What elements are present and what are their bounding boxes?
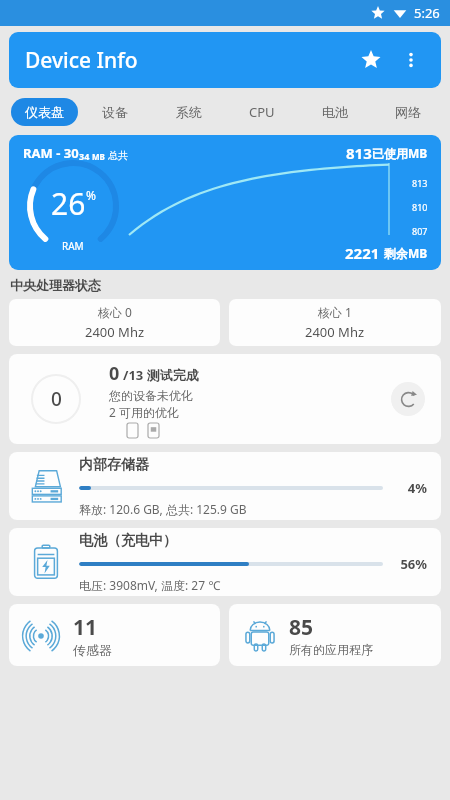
- staticText: RAM - 30: [23, 144, 79, 162]
- staticText: 核心 1: [318, 304, 352, 320]
- staticText: 总共: [108, 149, 128, 162]
- staticText: /13 测试完成: [123, 366, 199, 384]
- staticText: 2 可用的优化: [109, 404, 179, 420]
- staticText: 813: [412, 177, 428, 189]
- button[interactable]: 内部存储器: [9, 452, 441, 520]
- button[interactable]: RAM - 30: [9, 135, 441, 270]
- staticText: 设备: [102, 104, 128, 120]
- button[interactable]: 网络: [389, 98, 427, 126]
- staticText: 释放: 120.6 GB, 总共: 125.9 GB: [79, 501, 247, 517]
- button[interactable]: 电池: [316, 98, 354, 126]
- button[interactable]: Refresh: [391, 382, 425, 416]
- staticText: 电池（充电中）: [79, 532, 177, 550]
- button[interactable]: 电池（充电中）: [9, 528, 441, 596]
- staticText: 26: [51, 183, 86, 224]
- button[interactable]: 11: [9, 604, 220, 666]
- staticText: 电压: 3908mV, 温度: 27 ℃: [79, 577, 221, 593]
- staticText: 0: [51, 386, 62, 412]
- staticText: 系统: [176, 104, 202, 120]
- staticText: CPU: [249, 103, 275, 121]
- staticText: %: [86, 187, 96, 203]
- staticText: 0: [109, 361, 120, 386]
- button[interactable]: 核心 1: [229, 299, 441, 346]
- staticText: 传感器: [73, 642, 112, 658]
- staticText: 34: [79, 150, 90, 162]
- staticText: MB: [92, 151, 105, 162]
- staticText: 中央处理器状态: [10, 277, 101, 293]
- staticText: 2221: [345, 243, 380, 263]
- staticText: 您的设备未优化: [109, 388, 193, 403]
- staticText: 2400 Mhz: [305, 323, 365, 341]
- staticText: 核心 0: [98, 304, 132, 320]
- staticText: 2400 Mhz: [85, 323, 145, 341]
- button[interactable]: 设备: [96, 98, 134, 126]
- staticText: 85: [289, 613, 314, 642]
- staticText: RAM: [62, 239, 84, 253]
- staticText: 810: [412, 201, 428, 213]
- staticText: 已使用MB: [372, 145, 428, 161]
- staticText: 电池: [322, 104, 348, 120]
- staticText: 4%: [393, 479, 427, 497]
- button[interactable]: Device Info: [9, 32, 441, 88]
- staticText: 所有的应用程序: [289, 642, 373, 657]
- staticText: 807: [412, 225, 428, 237]
- staticText: 11: [73, 613, 98, 642]
- button[interactable]: More options: [393, 42, 429, 78]
- button[interactable]: Favorite: [353, 42, 389, 78]
- button[interactable]: 85: [229, 604, 441, 666]
- button[interactable]: CPU: [243, 97, 281, 127]
- staticText: 剩余MB: [384, 245, 428, 261]
- staticText: Device Info: [25, 46, 138, 75]
- staticText: 5:26: [414, 4, 440, 22]
- button[interactable]: 系统: [170, 98, 208, 126]
- button[interactable]: 仪表盘: [11, 98, 78, 126]
- staticText: 仪表盘: [25, 104, 64, 120]
- staticText: 网络: [395, 104, 421, 120]
- staticText: 813: [346, 143, 372, 163]
- staticText: 56%: [393, 555, 427, 573]
- staticText: 内部存储器: [79, 456, 149, 474]
- button[interactable]: 核心 0: [9, 299, 220, 346]
- button[interactable]: 0: [9, 354, 441, 444]
